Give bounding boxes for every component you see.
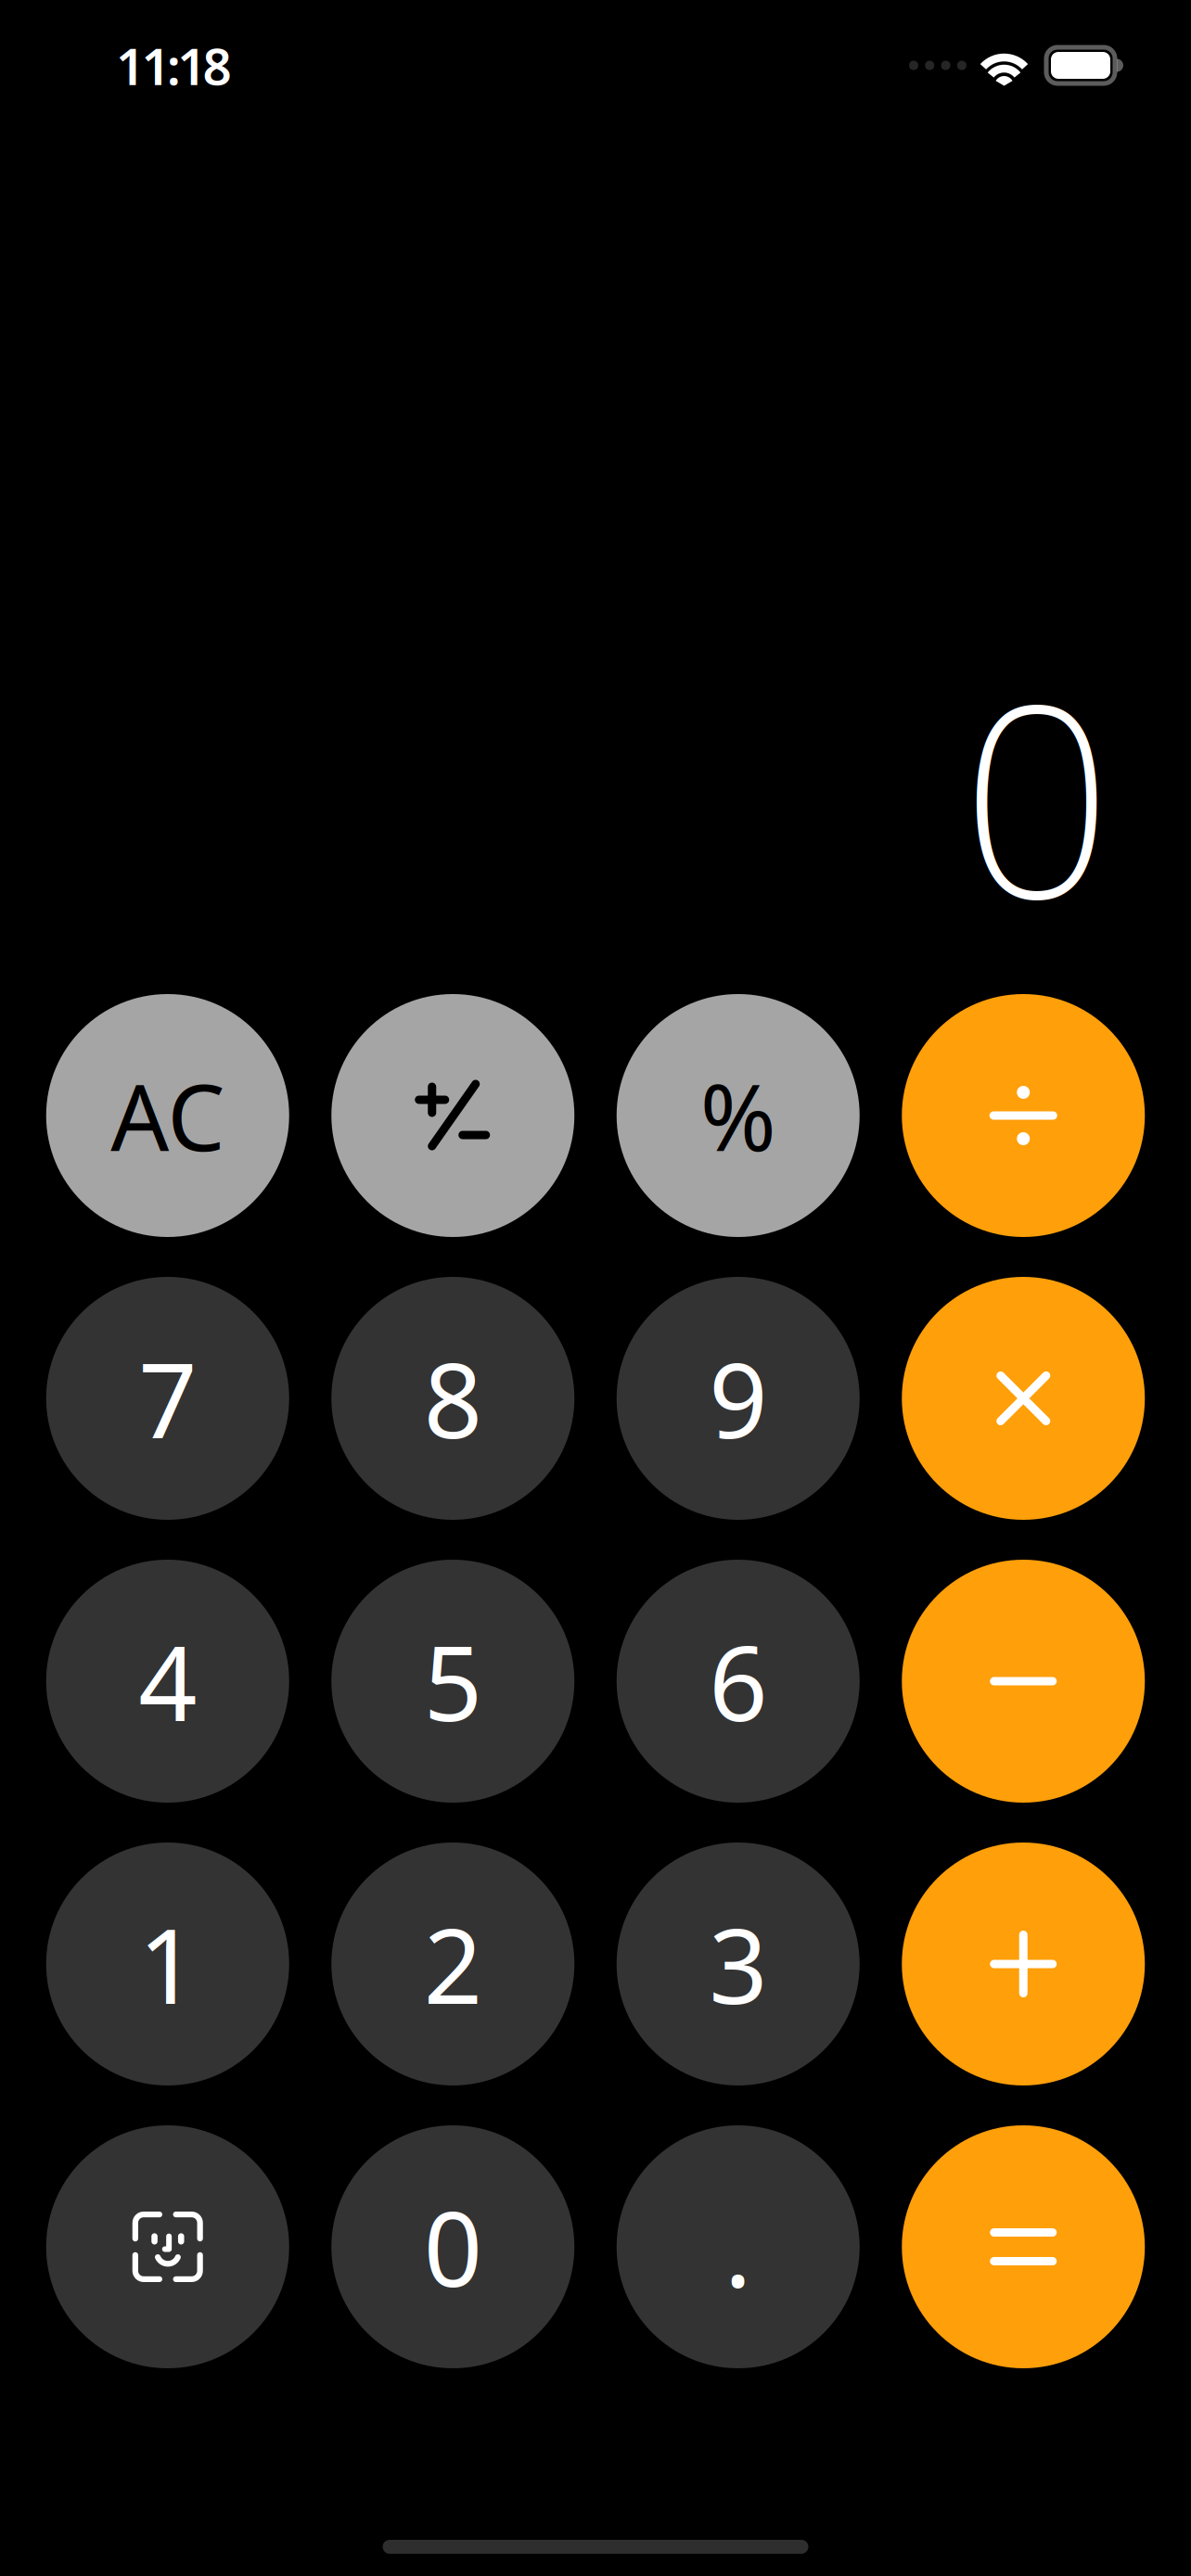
staticText: 4	[138, 1613, 197, 1749]
staticText: AC	[111, 1055, 225, 1176]
button[interactable]: Equals	[902, 2125, 1145, 2368]
staticText: 8	[424, 1330, 482, 1467]
button[interactable]: Face ID	[46, 2125, 289, 2368]
button[interactable]: Divide	[902, 994, 1145, 1237]
staticText: 2	[424, 1896, 482, 2032]
button[interactable]: %	[617, 994, 860, 1237]
staticText: 5	[424, 1613, 482, 1749]
button[interactable]: AC	[46, 994, 289, 1237]
staticText: 6	[709, 1613, 767, 1749]
button[interactable]: 9	[617, 1277, 860, 1520]
button[interactable]: 5	[331, 1560, 574, 1803]
button[interactable]: Minus	[902, 1560, 1145, 1803]
staticText: 11:18	[116, 32, 232, 99]
button[interactable]: Multiply	[902, 1277, 1145, 1520]
button[interactable]: Plus	[902, 1843, 1145, 2085]
button[interactable]: 1	[46, 1843, 289, 2085]
staticText: 0	[961, 618, 1112, 971]
button[interactable]: 2	[331, 1843, 574, 2085]
button[interactable]: Plus minus	[331, 994, 574, 1237]
button[interactable]: 4	[46, 1560, 289, 1803]
staticText: 9	[709, 1330, 767, 1467]
button[interactable]: 8	[331, 1277, 574, 1520]
staticText: .	[724, 2179, 752, 2315]
button[interactable]: 3	[617, 1843, 860, 2085]
staticText: 0	[424, 2179, 482, 2315]
staticText: 7	[138, 1330, 197, 1467]
staticText: %	[700, 1055, 776, 1176]
button[interactable]: .	[617, 2125, 860, 2368]
button[interactable]: 6	[617, 1560, 860, 1803]
button[interactable]: 7	[46, 1277, 289, 1520]
button[interactable]: 0	[331, 2125, 574, 2368]
staticText: 1	[138, 1896, 197, 2032]
staticText: 3	[709, 1896, 767, 2032]
